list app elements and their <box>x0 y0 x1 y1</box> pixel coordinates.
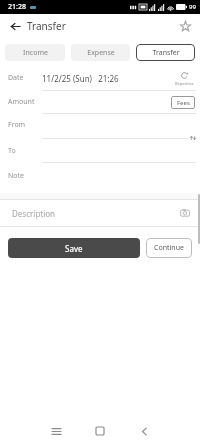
staticText: From <box>8 120 26 130</box>
staticText: Transfer <box>152 48 180 58</box>
button[interactable]: Repetitive <box>175 71 194 86</box>
staticText: Description <box>12 208 56 219</box>
button[interactable]: Back <box>6 17 24 35</box>
button[interactable]: Expense <box>71 44 130 61</box>
button[interactable]: Save <box>8 238 140 258</box>
button[interactable]: 11/2/25 (Sun) 21:26 <box>42 73 119 84</box>
button[interactable]: Swap accounts <box>188 136 198 140</box>
button[interactable]: Home <box>90 421 110 441</box>
button[interactable]: Back <box>134 421 154 441</box>
button[interactable]: Recent apps <box>46 421 66 441</box>
staticText: Transfer <box>27 19 66 33</box>
staticText: Fees <box>177 99 190 107</box>
button[interactable]: Continue <box>146 238 192 258</box>
staticText: 99 <box>189 3 196 11</box>
button[interactable]: Income <box>5 44 65 61</box>
button[interactable]: Fees <box>171 96 195 109</box>
staticText: Save <box>65 243 83 254</box>
staticText: Continue <box>154 243 184 253</box>
staticText: Repetitive <box>175 81 194 86</box>
staticText: Amount <box>8 97 35 107</box>
staticText: Income <box>23 48 48 58</box>
staticText: Expense <box>87 48 115 58</box>
staticText: 11/2/25 (Sun) 21:26 <box>42 73 119 84</box>
button[interactable]: Description <box>0 200 200 226</box>
staticText: 21:28 <box>8 2 26 12</box>
staticText: Note <box>8 171 25 181</box>
staticText: Date <box>8 73 24 83</box>
button[interactable]: Transfer <box>136 44 195 61</box>
staticText: To <box>8 146 16 156</box>
button[interactable]: Favorite <box>176 17 194 35</box>
button[interactable]: Add photo <box>178 206 192 220</box>
